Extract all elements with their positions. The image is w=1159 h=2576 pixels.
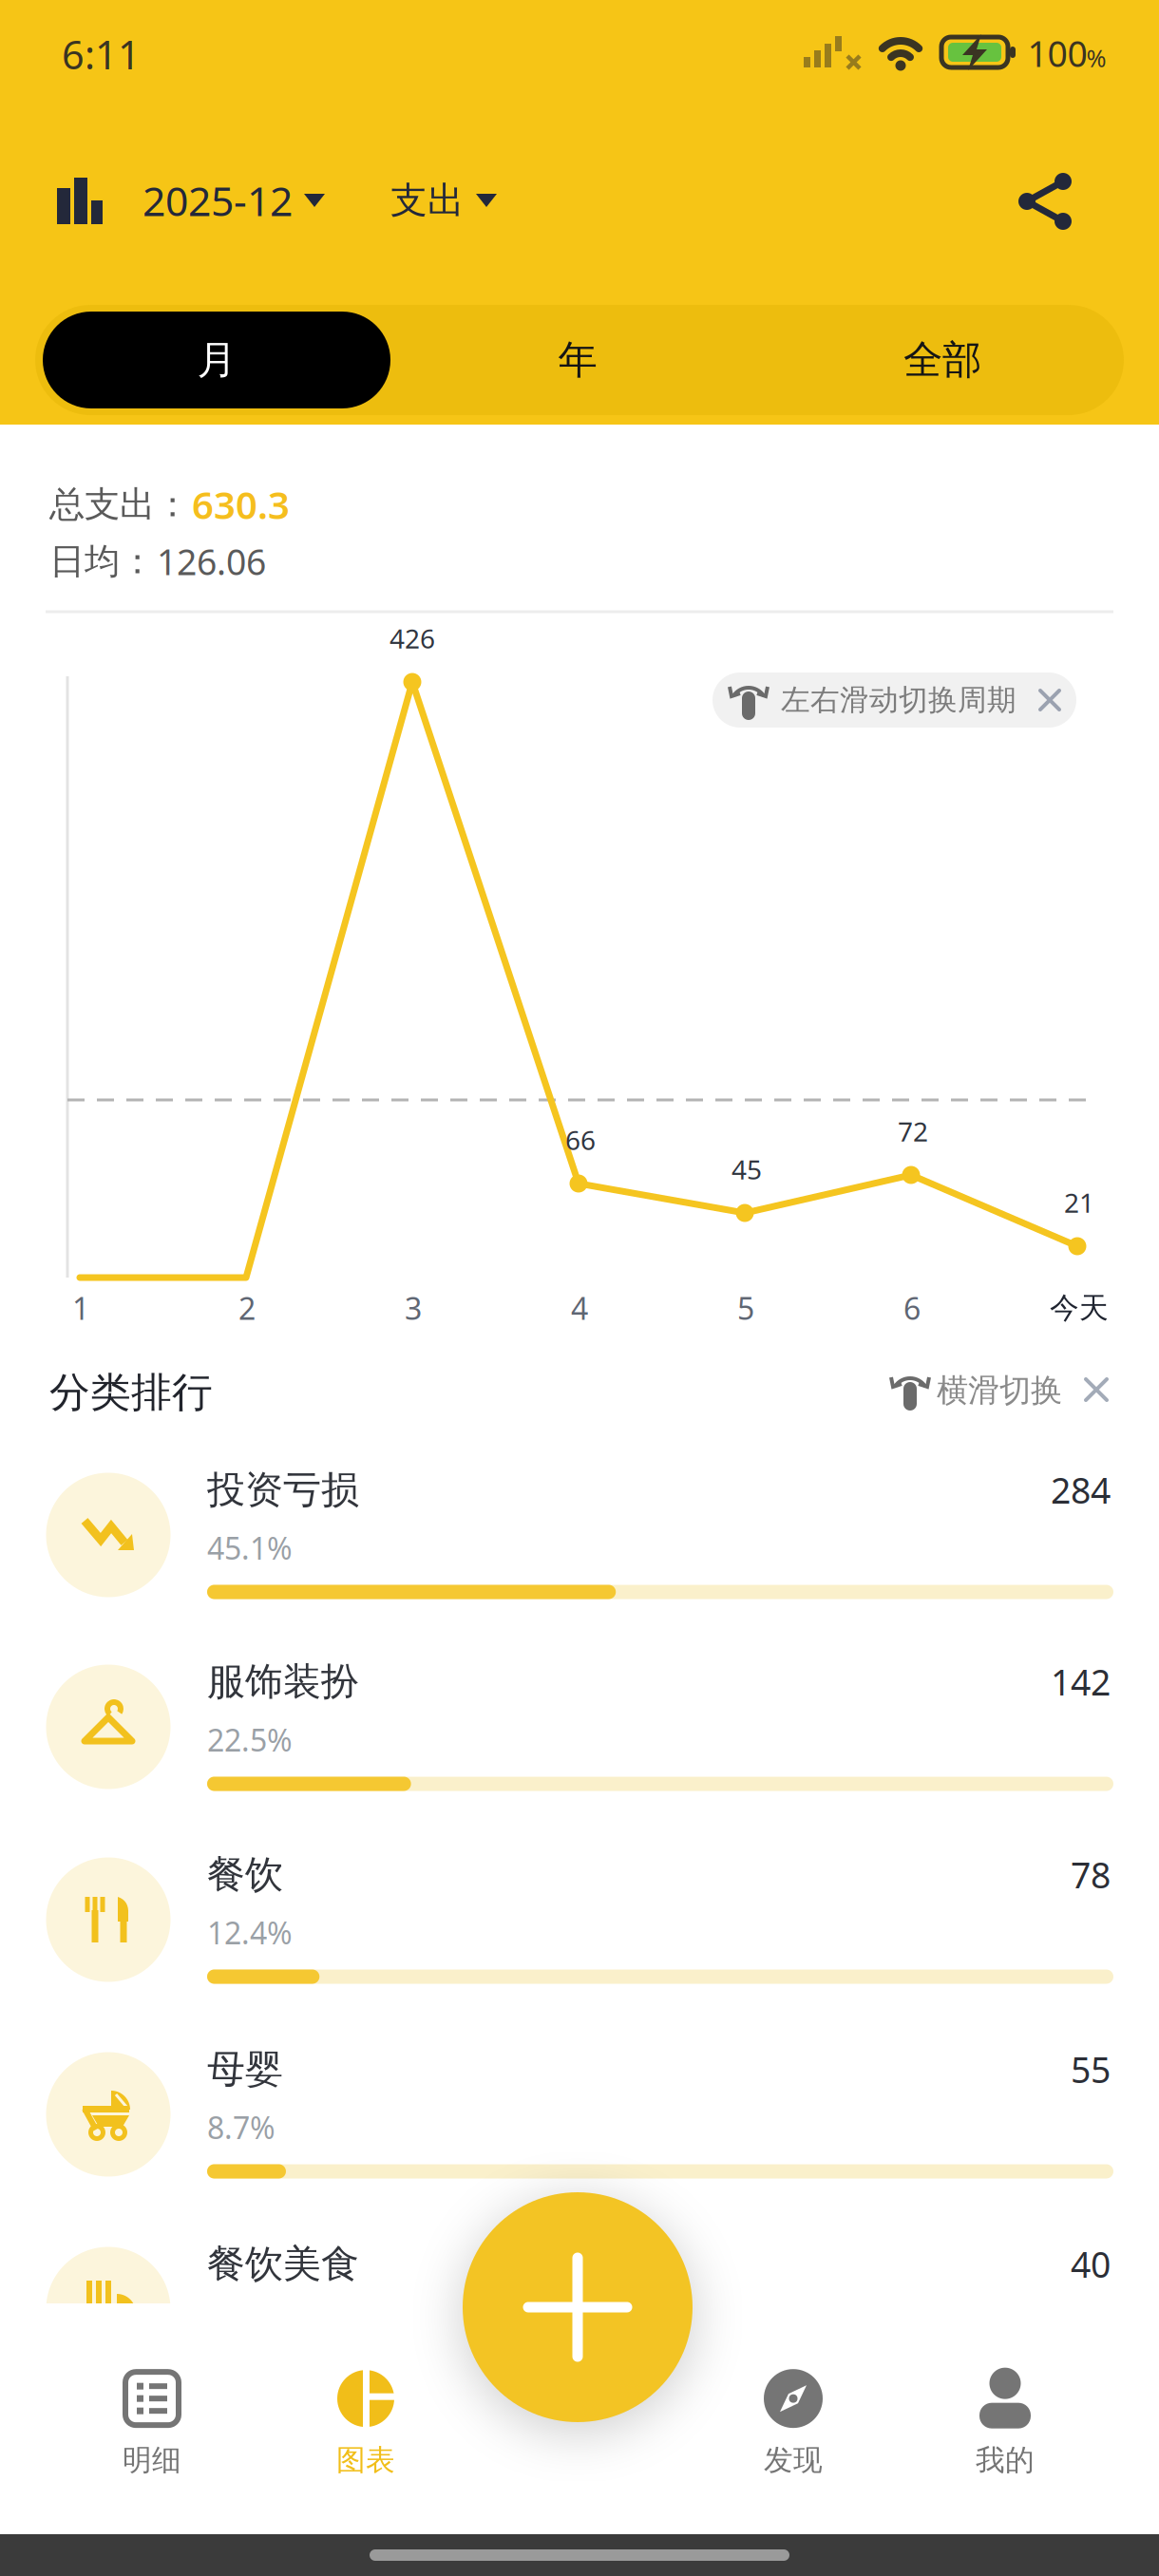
staticText: 我的: [976, 2442, 1035, 2478]
staticText: 72: [898, 1114, 928, 1149]
staticText: 100: [1027, 30, 1087, 77]
staticText: 12.4%: [207, 1912, 293, 1953]
staticText: 45: [731, 1152, 762, 1187]
staticText: 284: [1051, 1466, 1111, 1513]
staticText: 左右滑动切换周期: [781, 682, 1016, 718]
staticText: 5: [737, 1288, 754, 1328]
button[interactable]: 支出: [372, 162, 515, 238]
button[interactable]: 关闭提示: [712, 672, 1076, 728]
staticText: 全部: [903, 336, 981, 384]
staticText: 餐饮美食: [207, 2241, 359, 2287]
staticText: 66: [565, 1122, 596, 1157]
staticText: 分类排行: [49, 1368, 213, 1417]
staticText: 明细: [123, 2442, 181, 2478]
button[interactable]: 发现: [722, 2359, 864, 2487]
staticText: 年: [558, 336, 597, 384]
button[interactable]: 分享: [1002, 158, 1088, 243]
button[interactable]: 明细: [81, 2359, 223, 2487]
button[interactable]: 记一笔: [463, 2192, 693, 2422]
staticText: 630.3: [192, 479, 290, 530]
staticText: 6:11: [62, 28, 141, 80]
button[interactable]: 年: [402, 305, 753, 415]
staticText: 22.5%: [207, 1720, 293, 1760]
staticText: 总支出：: [49, 483, 190, 526]
staticText: 支出: [390, 178, 465, 223]
button[interactable]: 投资亏损: [46, 1442, 1113, 1628]
staticText: 1: [72, 1288, 89, 1328]
staticText: 2: [238, 1288, 256, 1328]
staticText: %: [1086, 42, 1106, 74]
button[interactable]: 图表: [294, 2359, 437, 2487]
staticText: 图表: [336, 2442, 395, 2478]
button[interactable]: 餐饮美食: [46, 2216, 1113, 2402]
button[interactable]: 全部: [767, 305, 1118, 415]
staticText: 餐饮: [207, 1851, 283, 1898]
staticText: 4: [571, 1288, 588, 1328]
staticText: 3: [405, 1288, 422, 1328]
staticText: 55: [1071, 2046, 1111, 2093]
staticText: 母婴: [207, 2046, 283, 2093]
staticText: 服饰装扮: [207, 1658, 359, 1705]
button[interactable]: 我的: [934, 2359, 1076, 2487]
staticText: 横滑切换: [937, 1371, 1062, 1410]
staticText: 21: [1064, 1185, 1094, 1220]
staticText: 142: [1051, 1658, 1111, 1705]
staticText: 2025-12: [142, 174, 293, 227]
staticText: 126.06: [157, 538, 266, 585]
staticText: 发现: [764, 2442, 823, 2478]
staticText: 月: [197, 336, 236, 384]
staticText: 投资亏损: [207, 1466, 359, 1513]
button[interactable]: 关闭提示: [1074, 1368, 1118, 1411]
staticText: 426: [389, 621, 435, 656]
button[interactable]: 2025-12: [120, 162, 348, 238]
staticText: 今天: [1050, 1290, 1109, 1326]
button[interactable]: 母婴: [46, 2022, 1113, 2207]
button[interactable]: 服饰装扮: [46, 1634, 1113, 1819]
staticText: 日均：: [49, 540, 155, 583]
button[interactable]: 月: [43, 312, 390, 408]
staticText: 45.1%: [207, 1528, 293, 1568]
staticText: 40: [1071, 2240, 1111, 2288]
staticText: 78: [1071, 1851, 1111, 1898]
staticText: 8.7%: [207, 2107, 275, 2147]
staticText: 6: [903, 1288, 921, 1328]
button[interactable]: 餐饮: [46, 1827, 1113, 2012]
